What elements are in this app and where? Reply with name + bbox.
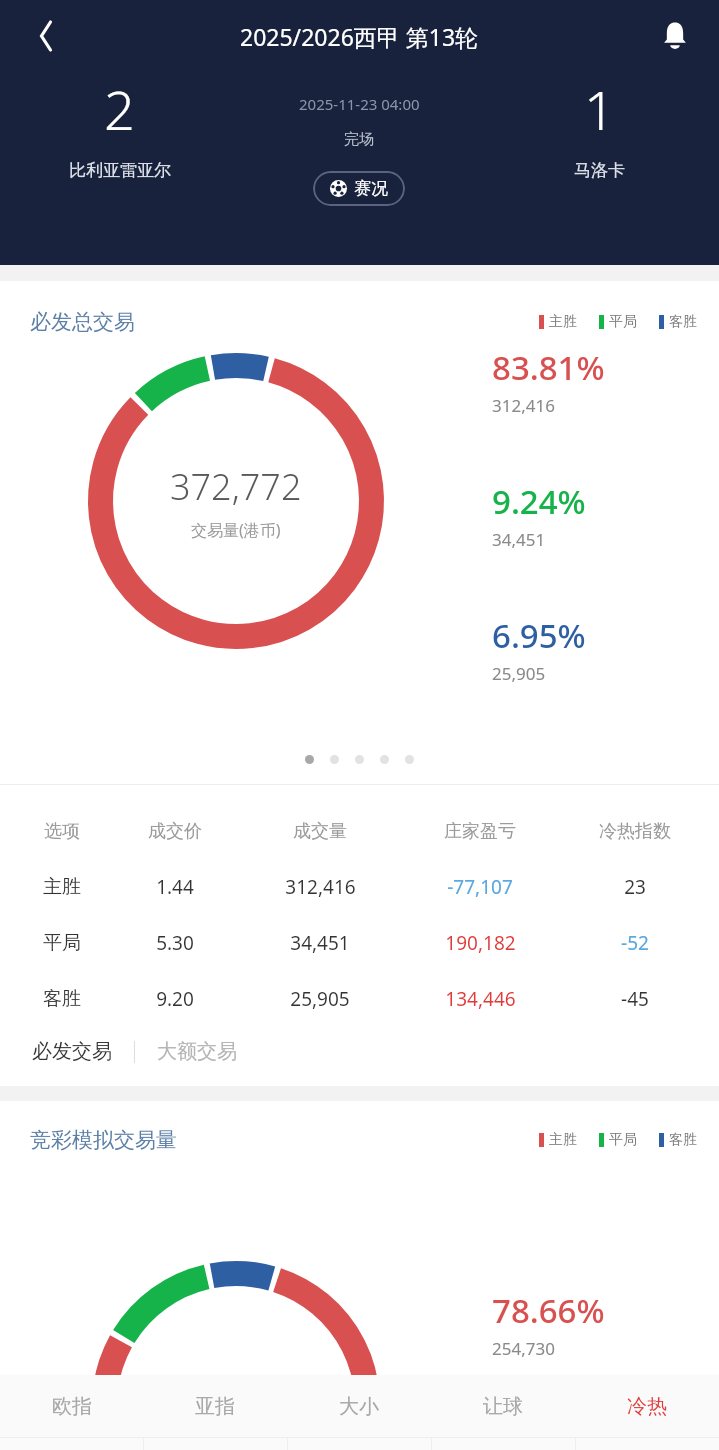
staticText: 25,905 <box>290 986 350 1012</box>
button[interactable]: 冷热 <box>575 1375 719 1437</box>
staticText: 欧指 <box>52 1394 92 1419</box>
staticText: 冷热 <box>627 1394 667 1419</box>
button[interactable]: 亚指 <box>143 1375 287 1437</box>
staticText: 平局 <box>609 1131 637 1149</box>
staticText: 25,905 <box>492 662 546 685</box>
staticText: 2 <box>104 72 135 146</box>
staticText: 78.66% <box>492 1288 605 1333</box>
staticText: 让球 <box>483 1394 523 1419</box>
staticText: 9.20 <box>156 986 194 1012</box>
staticText: 马洛卡 <box>574 160 625 181</box>
staticText: 客胜 <box>669 1131 697 1149</box>
staticText: 主胜 <box>549 313 577 331</box>
staticText: 190,182 <box>445 930 516 956</box>
staticText: 134,446 <box>445 986 516 1012</box>
staticText: 1.44 <box>156 874 194 900</box>
staticText: 平局 <box>609 313 637 331</box>
staticText: -77,107 <box>447 874 513 900</box>
staticText: 交易量(港币) <box>191 519 281 541</box>
staticText: 成交价 <box>148 820 202 843</box>
staticText: 2025/2026西甲 第13轮 <box>240 21 479 52</box>
staticText: 34,451 <box>290 930 350 956</box>
staticText: 必发总交易 <box>30 309 135 335</box>
staticText: 2025-11-23 04:00 <box>299 94 420 114</box>
staticText: 83.81% <box>492 345 605 390</box>
button[interactable]: 大额交易 <box>157 1039 237 1064</box>
staticText: 312,416 <box>285 874 356 900</box>
button[interactable]: 必发交易 <box>32 1039 112 1064</box>
staticText: 6.95% <box>492 613 586 658</box>
staticText: 冷热指数 <box>599 820 671 843</box>
staticText: 大额交易 <box>157 1039 237 1064</box>
staticText: 客胜 <box>43 987 81 1011</box>
staticText: 庄家盈亏 <box>444 820 516 843</box>
staticText: 竞彩模拟交易量 <box>30 1127 177 1153</box>
staticText: 34,451 <box>492 528 546 551</box>
staticText: 1 <box>584 72 615 146</box>
staticText: 大小 <box>339 1394 379 1419</box>
staticText: 必发交易 <box>32 1039 112 1064</box>
button[interactable]: Back <box>22 12 70 60</box>
button[interactable]: 大小 <box>287 1375 431 1437</box>
button[interactable]: 赛况 <box>313 171 405 206</box>
staticText: 254,730 <box>492 1337 555 1360</box>
staticText: 372,772 <box>170 462 302 511</box>
button[interactable]: 欧指 <box>0 1375 143 1437</box>
button[interactable]: 让球 <box>431 1375 575 1437</box>
staticText: 比利亚雷亚尔 <box>69 160 171 181</box>
staticText: -45 <box>621 986 649 1012</box>
staticText: 选项 <box>44 820 80 843</box>
staticText: 主胜 <box>43 875 81 899</box>
button[interactable]: Notifications <box>651 12 699 60</box>
staticText: 平局 <box>43 931 81 955</box>
staticText: 5.30 <box>156 930 194 956</box>
staticText: 完场 <box>344 130 374 149</box>
staticText: 23 <box>624 874 646 900</box>
staticText: 赛况 <box>354 178 388 199</box>
staticText: 9.24% <box>492 479 586 524</box>
staticText: 312,416 <box>492 394 555 417</box>
staticText: -52 <box>621 930 649 956</box>
staticText: 主胜 <box>549 1131 577 1149</box>
staticText: 客胜 <box>669 313 697 331</box>
staticText: 亚指 <box>195 1394 235 1419</box>
staticText: 成交量 <box>293 820 347 843</box>
